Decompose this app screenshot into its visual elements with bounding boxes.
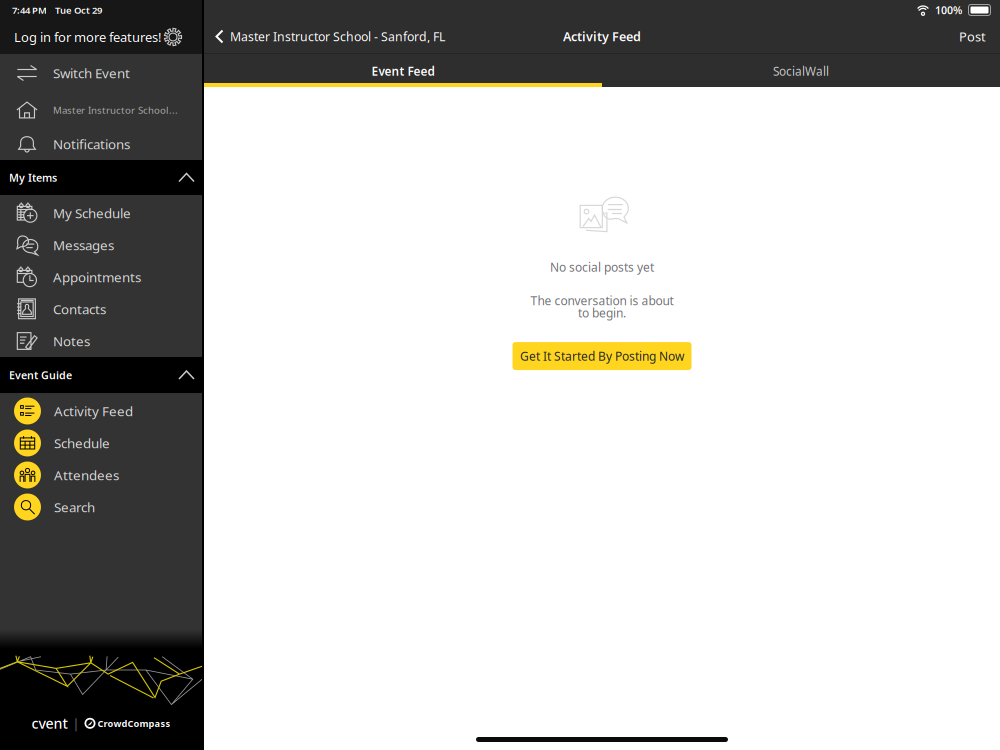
staticText: Log in for more features! [14, 28, 161, 46]
button[interactable]: Event Feed [204, 54, 602, 87]
staticText: CrowdCompass [97, 717, 170, 730]
staticText: Search [54, 498, 95, 516]
staticText: Switch Event [53, 64, 130, 82]
staticText: Event Guide [9, 368, 72, 382]
button[interactable]: Master Instructor School - Sanford, FL [204, 22, 445, 51]
staticText: Notifications [53, 135, 130, 153]
staticText: 7:44 PM [12, 3, 47, 16]
button[interactable]: Messages [0, 229, 202, 261]
staticText: cvent [31, 714, 67, 733]
staticText: Activity Feed [54, 402, 133, 420]
staticText: Appointments [53, 268, 141, 286]
staticText: Event Feed [371, 63, 434, 79]
button[interactable]: Notes [0, 325, 202, 357]
button[interactable]: Contacts [0, 293, 202, 325]
button[interactable]: SocialWall [602, 54, 1000, 87]
staticText: Activity Feed [563, 28, 641, 45]
button[interactable]: Settings [161, 23, 182, 51]
staticText: SocialWall [773, 63, 829, 79]
staticText: No social posts yet [550, 259, 654, 275]
staticText: Post [959, 28, 986, 45]
button[interactable]: Search [0, 491, 202, 523]
staticText: to begin. [578, 305, 626, 321]
button[interactable]: Appointments [0, 261, 202, 293]
staticText: Messages [53, 236, 114, 254]
button[interactable]: My Items [0, 160, 202, 195]
button[interactable]: Notifications [0, 128, 202, 160]
button[interactable]: Master Instructor School... [0, 92, 202, 128]
staticText: The conversation is about [530, 292, 673, 309]
staticText: My Schedule [53, 204, 131, 222]
staticText: | [72, 715, 79, 732]
button[interactable]: Post [959, 22, 1000, 51]
button[interactable]: Switch Event [0, 54, 202, 92]
staticText: Master Instructor School - Sanford, FL [230, 28, 445, 45]
button[interactable]: Attendees [0, 459, 202, 491]
staticText: Schedule [54, 434, 110, 452]
button[interactable]: My Schedule [0, 197, 202, 229]
button[interactable]: Get It Started By Posting Now [512, 342, 691, 370]
staticText: Notes [53, 332, 90, 350]
staticText: Contacts [53, 300, 106, 318]
staticText: My Items [9, 170, 57, 185]
button[interactable]: Activity Feed [0, 395, 202, 427]
staticText: Tue Oct 29 [55, 3, 102, 16]
staticText: Get It Started By Posting Now [520, 348, 684, 364]
button[interactable]: Event Guide [0, 357, 202, 393]
staticText: 100% [935, 3, 962, 17]
staticText: Master Instructor School... [53, 103, 178, 117]
staticText: Attendees [54, 466, 119, 484]
button[interactable]: Schedule [0, 427, 202, 459]
